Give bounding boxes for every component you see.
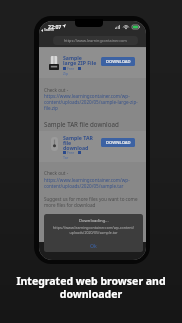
staticText: Free (67, 150, 75, 155)
button[interactable]: Ok (90, 242, 97, 249)
staticText: Sample TAR file download (44, 120, 119, 128)
staticText: Free (67, 66, 75, 71)
staticText: Search (44, 28, 55, 32)
staticText: https://www.learningcontainer.com/wp- co… (44, 177, 130, 189)
staticText: https://www.learningcontainer.com/wp- co… (44, 93, 138, 111)
staticText: 22:07 (48, 23, 62, 30)
staticText: Tar (63, 155, 69, 160)
staticText: https://www.learningcontainer.com/wp-con… (44, 225, 143, 235)
staticText: Sample large ZIP File (63, 54, 97, 66)
staticText: Zip (63, 71, 69, 76)
staticText: https://www.learningcontainer.com (64, 38, 127, 43)
button[interactable]: https://www.learningcontainer.com (53, 36, 138, 45)
staticText: Check out - (44, 87, 69, 93)
staticText: Integrated web browser and downloader (0, 274, 182, 301)
button[interactable]: DOWNLOAD (101, 57, 135, 66)
staticText: Sample TAR file download (63, 134, 93, 151)
staticText: Check out - (44, 170, 69, 176)
staticText: Downloading... (79, 218, 109, 224)
staticText: Ok (90, 242, 97, 249)
staticText: DOWNLOAD (106, 59, 131, 65)
staticText: DOWNLOAD (106, 140, 131, 146)
button[interactable]: DOWNLOAD (101, 138, 135, 147)
staticText: Suggest us for more files you want to co… (44, 196, 138, 208)
